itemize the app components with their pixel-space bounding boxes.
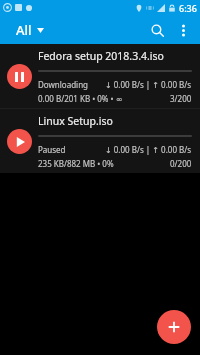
staticText: ↓ 0.00 B/s | ↑ 0.00 B/s xyxy=(105,144,192,155)
staticText: ↓ 0.00 B/s | ↑ 0.00 B/s xyxy=(105,79,192,90)
staticText: 235 KB/882 MB • 0% xyxy=(38,158,114,169)
staticText: Downloading xyxy=(38,79,88,90)
button[interactable]: Resume xyxy=(7,129,32,154)
staticText: 3/200 xyxy=(170,93,192,104)
button[interactable]: All xyxy=(12,18,48,42)
button[interactable]: Search xyxy=(144,17,170,43)
staticText: 0/200 xyxy=(170,158,192,169)
staticText: Paused xyxy=(38,144,66,155)
staticText: 0.00 B/201 KB • 0% • ∞ xyxy=(38,93,123,104)
button[interactable]: Add download xyxy=(157,310,191,344)
button[interactable]: More options xyxy=(170,17,196,43)
button[interactable]: Pause xyxy=(0,44,200,108)
staticText: Fedora setup 2018.3.4.iso xyxy=(38,49,164,63)
button[interactable]: Pause xyxy=(7,64,32,89)
button[interactable]: Resume xyxy=(0,109,200,173)
staticText: 6:36 xyxy=(179,2,197,14)
staticText: All xyxy=(16,21,32,39)
staticText: Linux Setup.iso xyxy=(38,114,113,128)
